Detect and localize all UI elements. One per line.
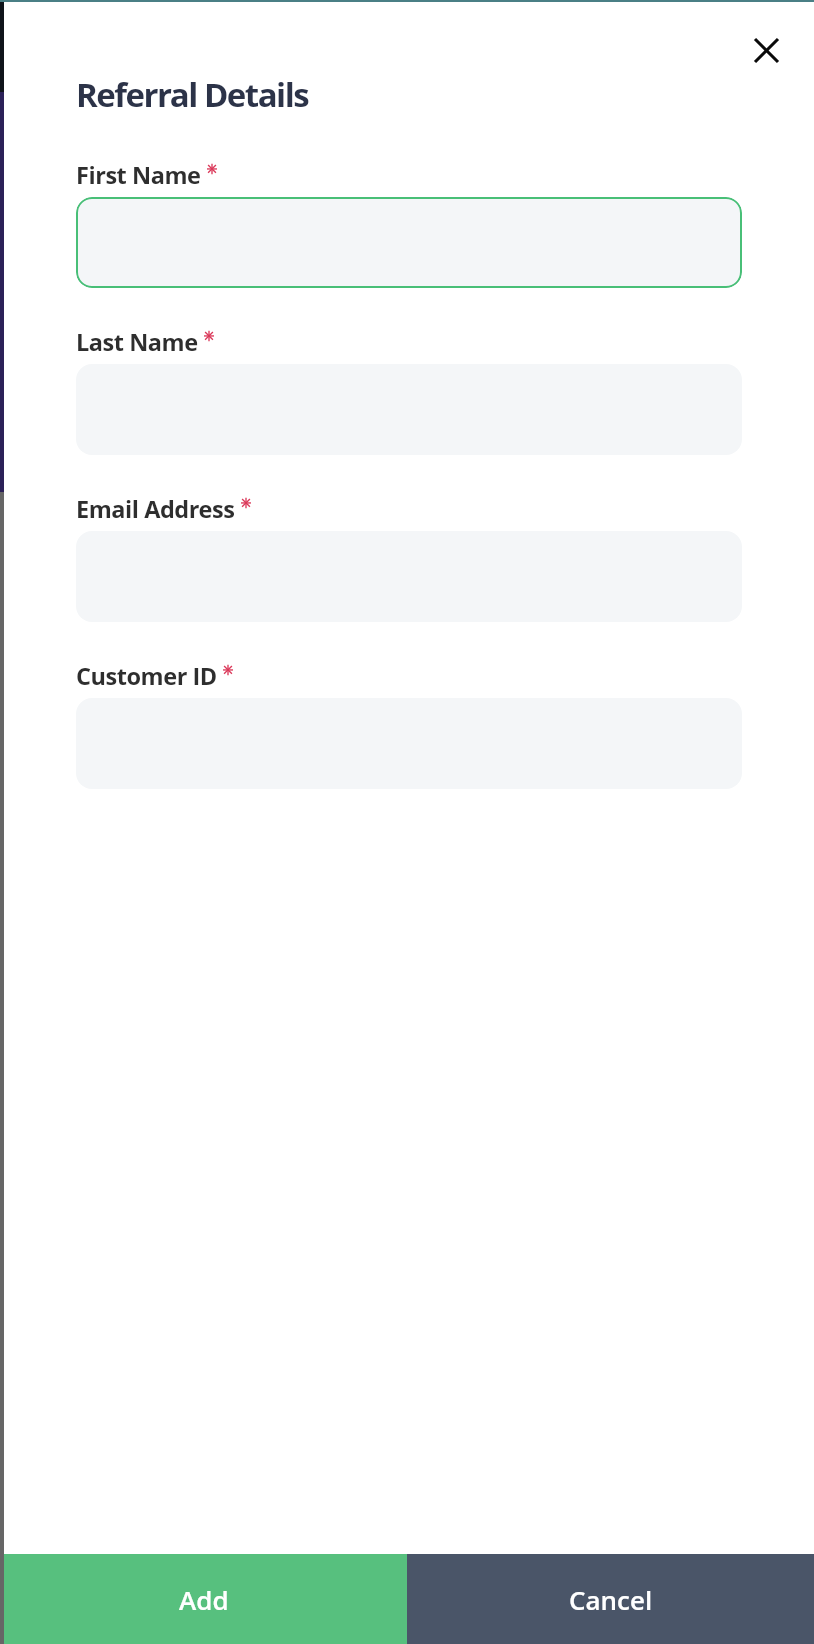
staticText: Cancel [569,1582,653,1617]
staticText: Referral Details [76,72,309,117]
button[interactable]: Add [0,1554,407,1644]
button[interactable]: Cancel [407,1554,814,1644]
staticText: First Name [76,159,201,191]
staticText: Email Address [76,493,235,525]
staticText: Last Name [76,326,198,358]
staticText: Add [179,1582,229,1617]
button[interactable] [76,197,742,288]
staticText: Customer ID [76,660,217,692]
button[interactable]: Close [740,24,792,76]
